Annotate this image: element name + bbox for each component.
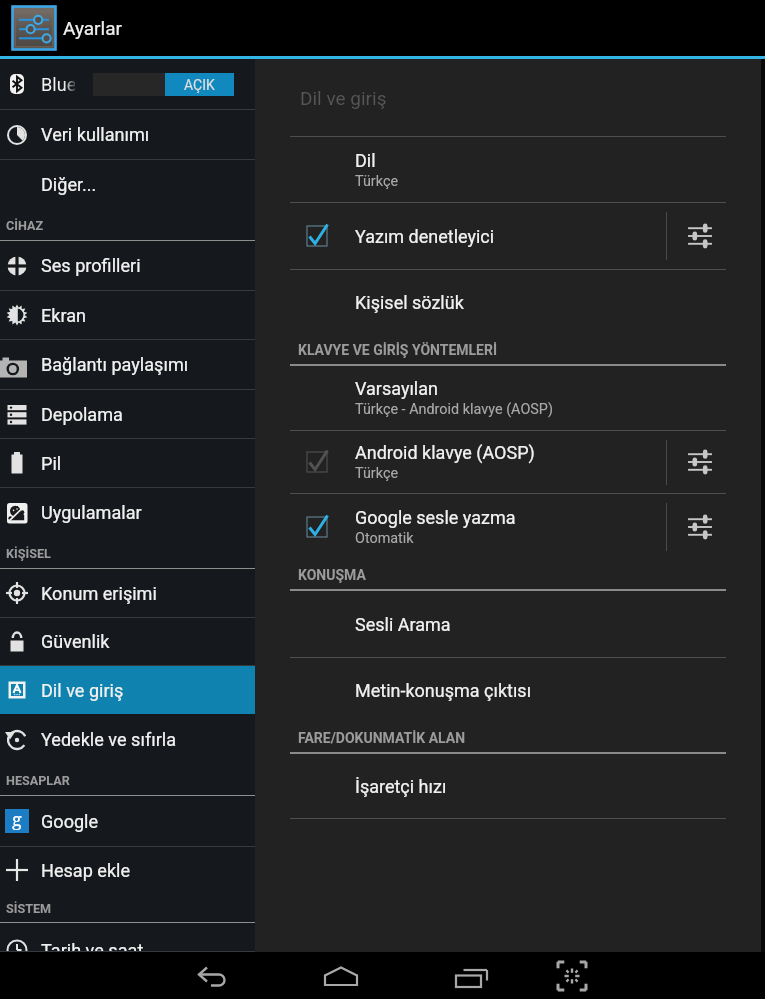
staticText: Güvenlik (41, 631, 110, 652)
staticText: Metin-konuşma çıktısı (355, 680, 532, 701)
button[interactable]: Ekran (0, 291, 255, 339)
button[interactable]: Uygulamalar (0, 488, 255, 537)
button[interactable]: İşaretçi hızı (255, 754, 761, 818)
staticText: Kişisel sözlük (355, 292, 464, 313)
staticText: Türkçe (355, 173, 399, 190)
staticText: CİHAZ (6, 218, 44, 233)
button[interactable]: Android klavye (AOSP) (255, 431, 761, 493)
staticText: KİŞİSEL (6, 546, 51, 561)
button[interactable]: Tarih ve saat (0, 923, 255, 951)
staticText: Otomatik (355, 530, 414, 547)
staticText: Ses profilleri (41, 255, 141, 276)
staticText: Sesli Arama (355, 614, 451, 635)
staticText: Uygulamalar (41, 502, 142, 523)
staticText: Dil (355, 150, 376, 171)
button[interactable]: g (0, 796, 255, 846)
staticText: SİSTEM (6, 901, 52, 916)
staticText: Diğer... (41, 174, 97, 195)
staticText: Android klavye (AOSP) (355, 442, 535, 463)
button[interactable]: Dil ve giriş (0, 666, 255, 714)
staticText: Veri kullanımı (41, 124, 150, 145)
button[interactable]: Depolama (0, 390, 255, 438)
button[interactable]: Varsayılan (255, 366, 761, 430)
button[interactable]: Settings (667, 494, 761, 559)
staticText: FARE/DOKUNMATİK ALAN (298, 730, 466, 746)
button[interactable]: Dil (255, 137, 761, 202)
staticText: Depolama (41, 404, 123, 425)
staticText: Türkçe (355, 465, 399, 482)
button[interactable]: Screenshot (549, 953, 595, 999)
button[interactable]: Back (190, 954, 236, 999)
staticText: KLAVYE VE GİRİŞ YÖNTEMLERİ (298, 342, 498, 358)
staticText: Hesap ekle (41, 860, 131, 881)
staticText: Google sesle yazma (355, 507, 516, 528)
staticText: Dil ve giriş (41, 680, 124, 701)
button[interactable]: Bluetooth (0, 59, 255, 109)
staticText: İşaretçi hızı (355, 776, 447, 797)
button[interactable]: Ses profilleri (0, 241, 255, 290)
button[interactable]: Home (318, 954, 364, 999)
button[interactable]: Google sesle yazma (255, 494, 761, 559)
button[interactable]: Recent apps (444, 953, 490, 999)
button[interactable]: Metin-konuşma çıktısı (255, 658, 761, 722)
staticText: HESAPLAR (6, 773, 70, 788)
staticText: Yazım denetleyici (355, 226, 495, 247)
button[interactable]: Yazım denetleyici (255, 203, 761, 269)
button[interactable]: Konum erişimi (0, 569, 255, 617)
button[interactable]: Veri kullanımı (0, 110, 255, 159)
button[interactable]: Diğer... (0, 160, 255, 209)
staticText: Yedekle ve sıfırla (41, 729, 177, 750)
staticText: g (12, 807, 22, 831)
button[interactable]: Settings (667, 431, 761, 493)
staticText: Konum erişimi (41, 583, 157, 604)
staticText: Bağlantı paylaşımı (41, 354, 189, 375)
staticText: AÇIK (184, 77, 215, 93)
button[interactable]: Hesap ekle (0, 847, 255, 893)
staticText: Pil (41, 453, 62, 474)
button[interactable]: Kişisel sözlük (255, 270, 761, 334)
staticText: Varsayılan (355, 378, 438, 399)
button[interactable]: Güvenlik (0, 618, 255, 665)
button[interactable]: Sesli Arama (255, 591, 761, 657)
button[interactable]: Settings (667, 203, 761, 269)
staticText: Dil ve giriş (300, 87, 387, 109)
button[interactable]: AÇIK (93, 73, 234, 96)
staticText: Tarih ve saat (41, 940, 144, 961)
staticText: Bluetooth (41, 74, 75, 95)
staticText: Türkçe - Android klavye (AOSP) (355, 401, 553, 418)
staticText: Ekran (41, 305, 87, 326)
staticText: Google (41, 811, 99, 832)
button[interactable]: Pil (0, 439, 255, 487)
staticText: Ayarlar (63, 17, 122, 39)
button[interactable]: Bağlantı paylaşımı (0, 340, 255, 389)
staticText: KONUŞMA (298, 567, 366, 583)
button[interactable]: Yedekle ve sıfırla (0, 715, 255, 764)
